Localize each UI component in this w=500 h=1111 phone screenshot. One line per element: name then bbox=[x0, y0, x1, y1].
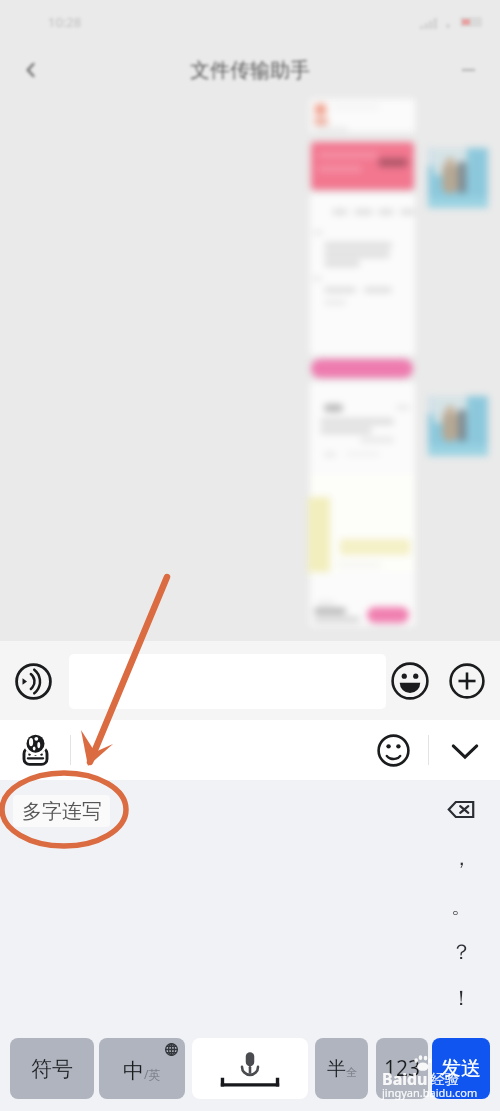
button[interactable]: Hide keyboard bbox=[444, 730, 485, 771]
button[interactable]: Chinese English toggle bbox=[99, 1038, 185, 1099]
staticText: 经验 bbox=[431, 1071, 459, 1089]
button[interactable]: ， bbox=[439, 836, 483, 880]
staticText: ！ bbox=[451, 985, 472, 1011]
staticText: 半 bbox=[327, 1057, 346, 1081]
staticText: ？ bbox=[451, 939, 472, 965]
button[interactable]: Back bbox=[12, 51, 50, 89]
button[interactable]: ！ bbox=[439, 976, 483, 1020]
staticText: 多字连写 bbox=[22, 799, 102, 824]
staticText: 全 bbox=[346, 1065, 357, 1079]
button[interactable]: ？ bbox=[439, 930, 483, 974]
staticText: /英 bbox=[144, 1066, 161, 1082]
staticText: 123 bbox=[384, 1054, 421, 1083]
button[interactable]: Emoji bbox=[373, 730, 414, 771]
button[interactable]: Numbers bbox=[376, 1038, 428, 1099]
button[interactable]: Switch input language bbox=[15, 730, 55, 770]
button[interactable]: Backspace bbox=[439, 787, 483, 831]
staticText: 。 bbox=[451, 893, 472, 919]
button[interactable]: 。 bbox=[439, 884, 483, 928]
button[interactable]: 多字连写 bbox=[13, 795, 110, 827]
button[interactable]: More options bbox=[445, 659, 489, 703]
staticText: 文件传输助手 bbox=[190, 58, 310, 83]
staticText: 中 bbox=[123, 1058, 144, 1084]
button[interactable]: Emoji bbox=[388, 659, 432, 703]
staticText: jingyan.baidu.com bbox=[382, 1085, 478, 1100]
staticText: 10:28 bbox=[48, 13, 82, 31]
staticText: 发送 bbox=[441, 1056, 481, 1081]
button[interactable]: Symbols bbox=[10, 1038, 94, 1099]
button[interactable]: Space bbox=[192, 1038, 308, 1099]
button[interactable]: Voice input bbox=[11, 659, 55, 703]
staticText: 符号 bbox=[31, 1056, 73, 1082]
button[interactable]: Send bbox=[432, 1038, 490, 1099]
staticText: ， bbox=[451, 845, 472, 871]
button[interactable] bbox=[69, 654, 386, 709]
staticText: Baidu bbox=[382, 1068, 428, 1090]
button[interactable]: More bbox=[450, 52, 486, 88]
button[interactable]: Half width full width bbox=[315, 1038, 368, 1099]
